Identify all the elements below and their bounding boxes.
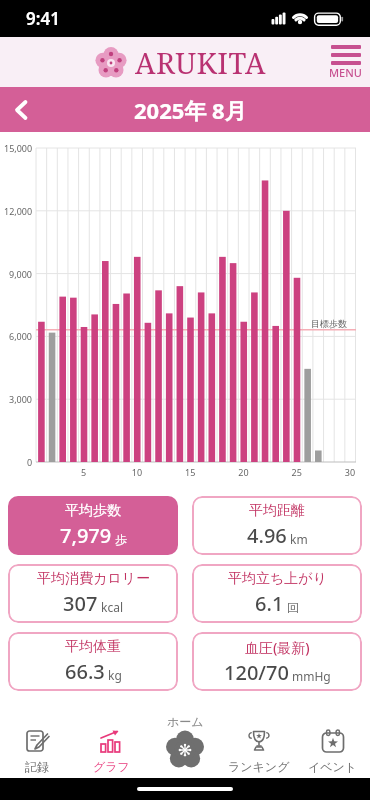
staticText: km: [290, 531, 308, 547]
staticText: MENU: [329, 65, 362, 80]
staticText: ランキング: [228, 759, 290, 774]
button[interactable]: 平均立ち上がり: [192, 564, 362, 623]
button[interactable]: 血圧(最新): [192, 632, 362, 691]
button[interactable]: 平均体重: [8, 632, 178, 691]
staticText: 66.3: [65, 658, 105, 685]
staticText: 6.1: [255, 590, 284, 617]
staticText: kcal: [101, 599, 123, 615]
button[interactable]: 平均距離: [192, 496, 362, 555]
staticText: 平均距離: [249, 502, 305, 520]
staticText: ホーム: [167, 714, 204, 729]
staticText: 平均立ち上がり: [228, 570, 327, 588]
staticText: 記録: [25, 759, 49, 774]
button[interactable]: 平均歩数: [8, 496, 178, 555]
staticText: 歩: [115, 532, 127, 547]
staticText: 2025年 8月: [134, 95, 247, 125]
staticText: イベント: [308, 759, 358, 774]
button[interactable]: グラフ: [74, 705, 148, 774]
staticText: 120/70: [224, 659, 289, 686]
staticText: 平均歩数: [65, 502, 121, 520]
button[interactable]: 平均消費カロリー: [8, 564, 178, 623]
button[interactable]: 記録: [0, 705, 74, 774]
button[interactable]: MENU: [329, 45, 362, 80]
staticText: 307: [63, 590, 98, 617]
staticText: 平均消費カロリー: [37, 570, 150, 588]
staticText: 血圧(最新): [245, 638, 310, 657]
button[interactable]: ランキング: [222, 705, 296, 774]
button[interactable]: イベント: [296, 705, 370, 774]
staticText: mmHg: [292, 668, 331, 684]
staticText: ARUKITA: [135, 43, 266, 82]
staticText: 7,979: [60, 522, 112, 549]
staticText: 9:41: [26, 7, 60, 30]
staticText: 4.96: [247, 522, 287, 549]
button[interactable]: ホーム: [165, 714, 205, 770]
staticText: 平均体重: [65, 638, 121, 656]
staticText: グラフ: [93, 759, 130, 774]
staticText: 回: [287, 600, 299, 615]
button[interactable]: [13, 100, 29, 120]
staticText: kg: [108, 667, 122, 683]
